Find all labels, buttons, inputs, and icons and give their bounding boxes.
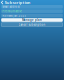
staticText: Subscription [5,0,31,5]
staticText: Cancel subscription [18,23,45,26]
staticText: Email address [2,5,19,8]
button[interactable]: Back [0,0,4,4]
button[interactable]: Manage plan [1,18,63,22]
staticText: Premium active [2,9,22,13]
staticText: Manage plan [22,18,42,22]
staticText: Renews Jan 2025 [2,14,26,17]
button[interactable]: Cancel subscription [1,23,63,27]
